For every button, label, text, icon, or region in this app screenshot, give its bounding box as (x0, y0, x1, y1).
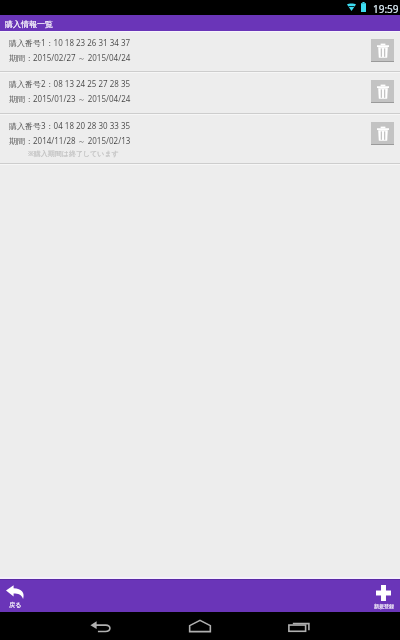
staticText: 購入情報一覧 (5, 19, 53, 29)
button[interactable]: 新規登録 (360, 579, 400, 612)
staticText: ※購入期間は終了しています (28, 149, 119, 159)
button[interactable]: 削除 (371, 80, 394, 103)
button[interactable]: 購入番号3：04 18 20 28 30 33 35 (0, 115, 400, 165)
staticText: 新規登録 (374, 603, 394, 609)
button[interactable]: 削除 (371, 122, 394, 145)
button[interactable]: 削除 (371, 39, 394, 62)
button[interactable]: Home (166, 612, 234, 640)
staticText: 購入番号2：08 13 24 25 27 28 35 (9, 78, 131, 89)
button[interactable]: Recents (265, 612, 333, 640)
button[interactable]: Back (67, 612, 135, 640)
staticText: 期間：2014/11/28 ～ 2015/02/13 (9, 135, 131, 146)
button[interactable]: 戻る (0, 579, 32, 612)
staticText: 期間：2015/01/23 ～ 2015/04/24 (9, 93, 131, 104)
button[interactable]: 購入番号2：08 13 24 25 27 28 35 (0, 73, 400, 115)
staticText: 購入番号1：10 18 23 26 31 34 37 (9, 37, 131, 48)
staticText: 戻る (9, 601, 22, 609)
button[interactable]: 購入番号1：10 18 23 26 31 34 37 (0, 32, 400, 73)
staticText: 期間：2015/02/27 ～ 2015/04/24 (9, 52, 131, 63)
staticText: 19:59 (373, 2, 399, 16)
staticText: 購入番号3：04 18 20 28 30 33 35 (9, 120, 131, 131)
